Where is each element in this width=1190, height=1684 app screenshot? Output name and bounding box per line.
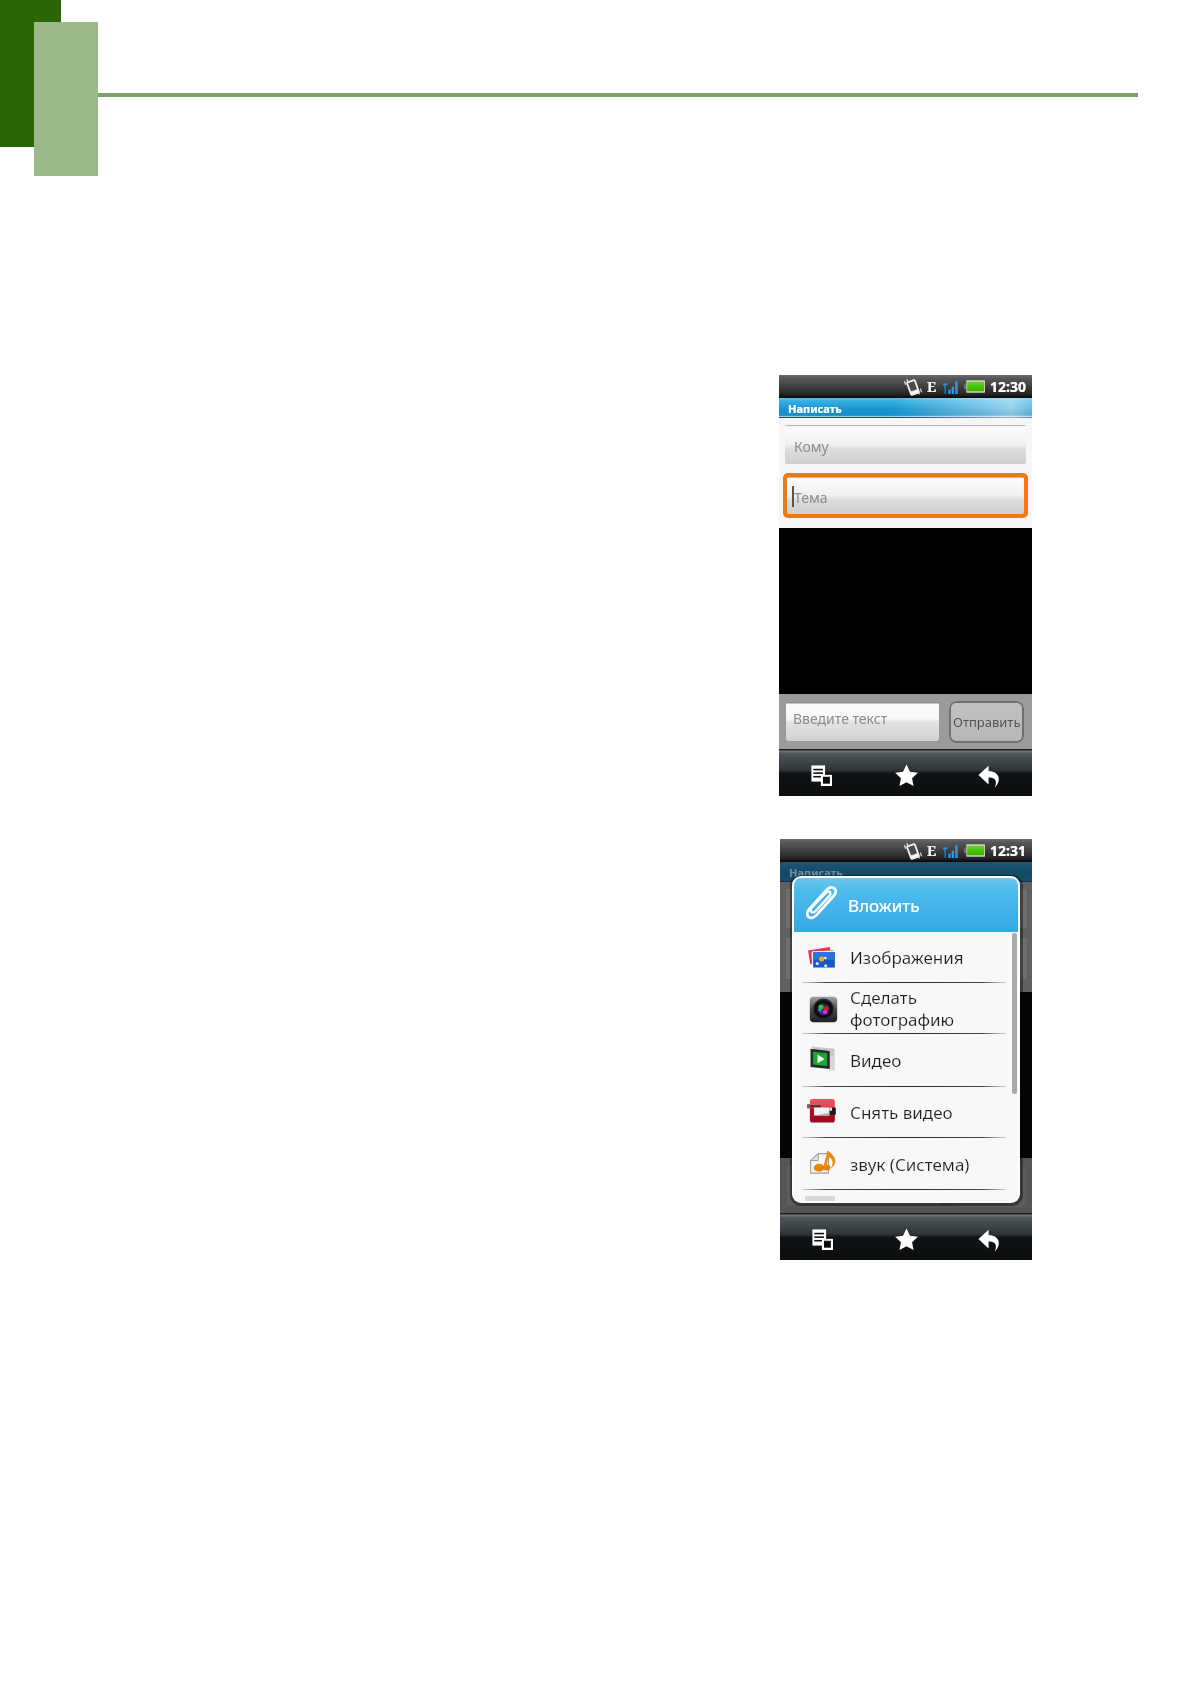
button[interactable]: Вложить <box>794 878 1018 932</box>
staticText: Снять видео <box>850 1101 953 1124</box>
button[interactable]: Favorite <box>864 749 948 796</box>
button[interactable]: Favorite <box>864 1213 948 1260</box>
staticText: Видео <box>850 1049 902 1072</box>
staticText: Вложить <box>848 894 920 917</box>
staticText: Сделать фотографию <box>850 986 955 1031</box>
staticText: Написать <box>789 865 843 880</box>
staticText: Изображения <box>850 946 964 969</box>
staticText: 12:31 <box>990 841 1026 860</box>
button[interactable]: звук (Система) <box>794 1138 1018 1190</box>
button[interactable]: Отправить <box>949 701 1024 743</box>
staticText: Тема <box>794 488 828 507</box>
staticText: E <box>927 841 937 860</box>
staticText: Кому <box>794 437 829 456</box>
button[interactable]: Menu <box>779 749 864 796</box>
button[interactable]: Введите текст <box>786 702 939 741</box>
button[interactable]: Сделать фотографию <box>794 983 1018 1034</box>
button[interactable]: Back <box>948 749 1032 796</box>
staticText: Отправить <box>953 713 1021 731</box>
staticText: E <box>927 377 937 396</box>
button[interactable]: Back <box>948 1213 1032 1260</box>
staticText: 12:30 <box>990 377 1026 396</box>
button[interactable]: Снять видео <box>794 1087 1018 1138</box>
button[interactable]: Видео <box>794 1034 1018 1087</box>
button[interactable]: Menu <box>780 1213 864 1260</box>
staticText: Написать <box>788 401 842 416</box>
button[interactable]: Изображения <box>794 932 1018 983</box>
staticText: Введите текст <box>793 709 888 728</box>
button[interactable]: Тема <box>787 477 1024 514</box>
staticText: звук (Система) <box>850 1153 970 1176</box>
button[interactable]: Кому <box>785 425 1026 464</box>
